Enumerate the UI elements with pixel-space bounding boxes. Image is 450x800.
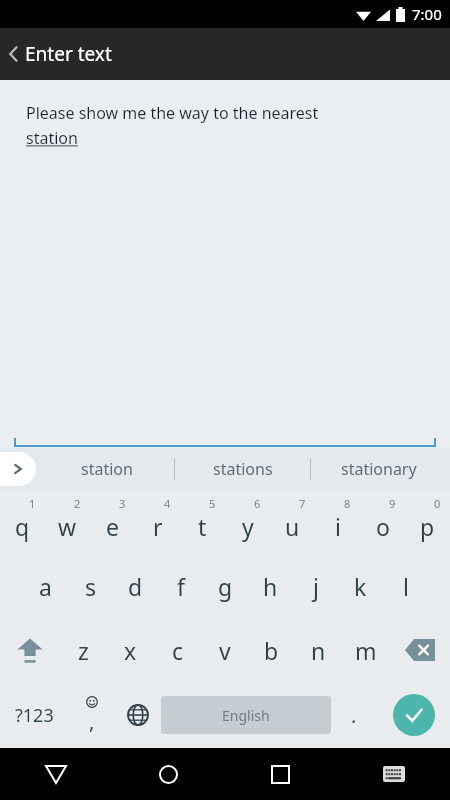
staticText: l <box>403 571 409 602</box>
staticText: i <box>335 511 341 542</box>
button[interactable]: Home <box>112 748 224 800</box>
staticText: station <box>81 458 133 480</box>
staticText: x <box>124 635 137 666</box>
button[interactable]: stationary <box>311 448 446 490</box>
button[interactable]: ?123 <box>0 682 69 748</box>
staticText: e <box>106 511 119 542</box>
staticText: . <box>351 702 357 729</box>
staticText: d <box>128 571 143 602</box>
staticText: Enter text <box>25 41 112 67</box>
button[interactable]: . <box>331 682 377 748</box>
staticText: 4 <box>164 496 171 511</box>
staticText: p <box>420 511 435 542</box>
staticText: ?123 <box>15 703 54 728</box>
button[interactable]: f <box>158 554 203 618</box>
staticText: z <box>78 635 89 666</box>
button[interactable]: n <box>295 618 342 682</box>
button[interactable]: x <box>107 618 154 682</box>
button[interactable]: o <box>360 490 405 554</box>
staticText: 0 <box>434 496 441 511</box>
staticText: Please show me the way to the nearest <box>26 102 319 124</box>
button[interactable]: Recents <box>224 748 337 800</box>
staticText: r <box>153 511 163 542</box>
staticText: station <box>26 127 78 149</box>
staticText: c <box>172 635 184 666</box>
staticText: 6 <box>254 496 261 511</box>
staticText: stations <box>213 458 273 480</box>
staticText: m <box>355 635 377 666</box>
button[interactable]: Expand suggestions <box>0 452 36 486</box>
button[interactable]: b <box>248 618 295 682</box>
button[interactable]: q <box>0 490 45 554</box>
button[interactable]: Enter text <box>0 28 450 80</box>
button[interactable]: l <box>383 554 428 618</box>
button[interactable]: c <box>154 618 201 682</box>
button[interactable]: station <box>40 448 174 490</box>
button[interactable]: g <box>203 554 248 618</box>
staticText: 7:00 <box>412 4 442 24</box>
staticText: English <box>222 706 270 725</box>
staticText: b <box>264 635 279 666</box>
button[interactable]: i <box>315 490 360 554</box>
button[interactable]: r <box>135 490 180 554</box>
button[interactable]: Change language <box>115 682 161 748</box>
button[interactable]: English <box>161 696 331 734</box>
button[interactable]: Comma and emoji <box>69 682 115 748</box>
staticText: 1 <box>29 496 36 511</box>
staticText: h <box>263 571 278 602</box>
button[interactable]: stations <box>175 448 310 490</box>
button[interactable]: u <box>270 490 315 554</box>
staticText: 3 <box>119 496 126 511</box>
staticText: s <box>85 571 97 602</box>
staticText: g <box>218 571 233 602</box>
staticText: n <box>311 635 326 666</box>
staticText: a <box>39 571 52 602</box>
button[interactable]: Keyboard switcher <box>337 748 450 800</box>
button[interactable]: w <box>45 490 90 554</box>
staticText: , <box>89 708 95 735</box>
button[interactable]: t <box>180 490 225 554</box>
button[interactable]: Shift <box>0 618 60 682</box>
staticText: f <box>177 571 185 602</box>
staticText: 7 <box>299 496 306 511</box>
button[interactable]: v <box>201 618 248 682</box>
button[interactable]: z <box>60 618 107 682</box>
button[interactable]: Done <box>393 694 435 736</box>
button[interactable]: m <box>342 618 389 682</box>
staticText: k <box>354 571 367 602</box>
button[interactable]: Back <box>0 748 112 800</box>
staticText: 2 <box>74 496 81 511</box>
button[interactable]: d <box>113 554 158 618</box>
button[interactable]: Backspace <box>389 618 450 682</box>
staticText: 8 <box>344 496 351 511</box>
button[interactable]: y <box>225 490 270 554</box>
staticText: o <box>376 511 390 542</box>
staticText: q <box>15 511 30 542</box>
staticText: 5 <box>209 496 216 511</box>
staticText: j <box>313 571 319 602</box>
staticText: t <box>198 511 207 542</box>
staticText: y <box>242 511 254 542</box>
staticText: 9 <box>389 496 396 511</box>
button[interactable]: e <box>90 490 135 554</box>
button[interactable]: h <box>248 554 293 618</box>
button[interactable]: p <box>405 490 450 554</box>
staticText: w <box>58 511 77 542</box>
button[interactable]: a <box>22 554 68 618</box>
staticText: u <box>285 511 300 542</box>
staticText: v <box>219 635 231 666</box>
staticText: stationary <box>341 458 417 480</box>
button[interactable]: k <box>338 554 383 618</box>
button[interactable]: s <box>68 554 113 618</box>
button[interactable]: j <box>293 554 338 618</box>
